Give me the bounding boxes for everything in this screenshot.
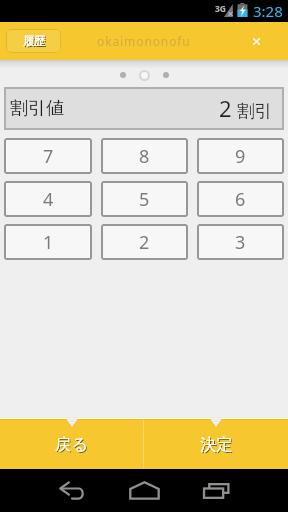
staticText: 履歴 [24,35,46,49]
staticText: 割引値 [10,97,64,120]
button[interactable]: 決定 [144,420,288,469]
staticText: okaimononofu [97,33,191,49]
staticText: 4 [43,187,54,212]
button[interactable]: 6 [197,181,284,217]
button[interactable]: 戻る [0,420,143,469]
button[interactable]: 履歴 [6,29,61,53]
staticText: 9 [235,144,246,169]
staticText: 8 [139,144,150,169]
staticText: 決定 [200,434,233,455]
staticText: 1 [43,230,54,255]
staticText: 3:28 [253,1,283,21]
button[interactable]: 1 [4,224,92,260]
staticText: 6 [235,187,246,212]
staticText: 2 [139,230,150,255]
staticText: 割引 [237,100,272,122]
staticText: 決定 [201,435,234,456]
button[interactable]: 8 [101,138,188,174]
button[interactable]: 9 [197,138,284,174]
staticText: 5 [139,187,150,212]
button[interactable]: 4 [4,181,92,217]
button[interactable]: Recents [180,469,252,512]
staticText: 3 [235,230,246,255]
button[interactable]: Home [108,469,180,512]
button[interactable]: 7 [4,138,92,174]
staticText: 戻る [55,434,89,455]
staticText: 3G [215,3,227,15]
button[interactable]: 割引値 [4,87,284,130]
button[interactable]: 2 [101,224,188,260]
staticText: 戻る [56,435,90,456]
button[interactable]: Close [243,28,269,54]
staticText: 7 [43,144,54,169]
staticText: 履歴 [23,34,45,48]
button[interactable]: 3 [197,224,284,260]
staticText: 2 [219,93,232,123]
button[interactable]: 5 [101,181,188,217]
button[interactable]: Back [36,469,108,512]
